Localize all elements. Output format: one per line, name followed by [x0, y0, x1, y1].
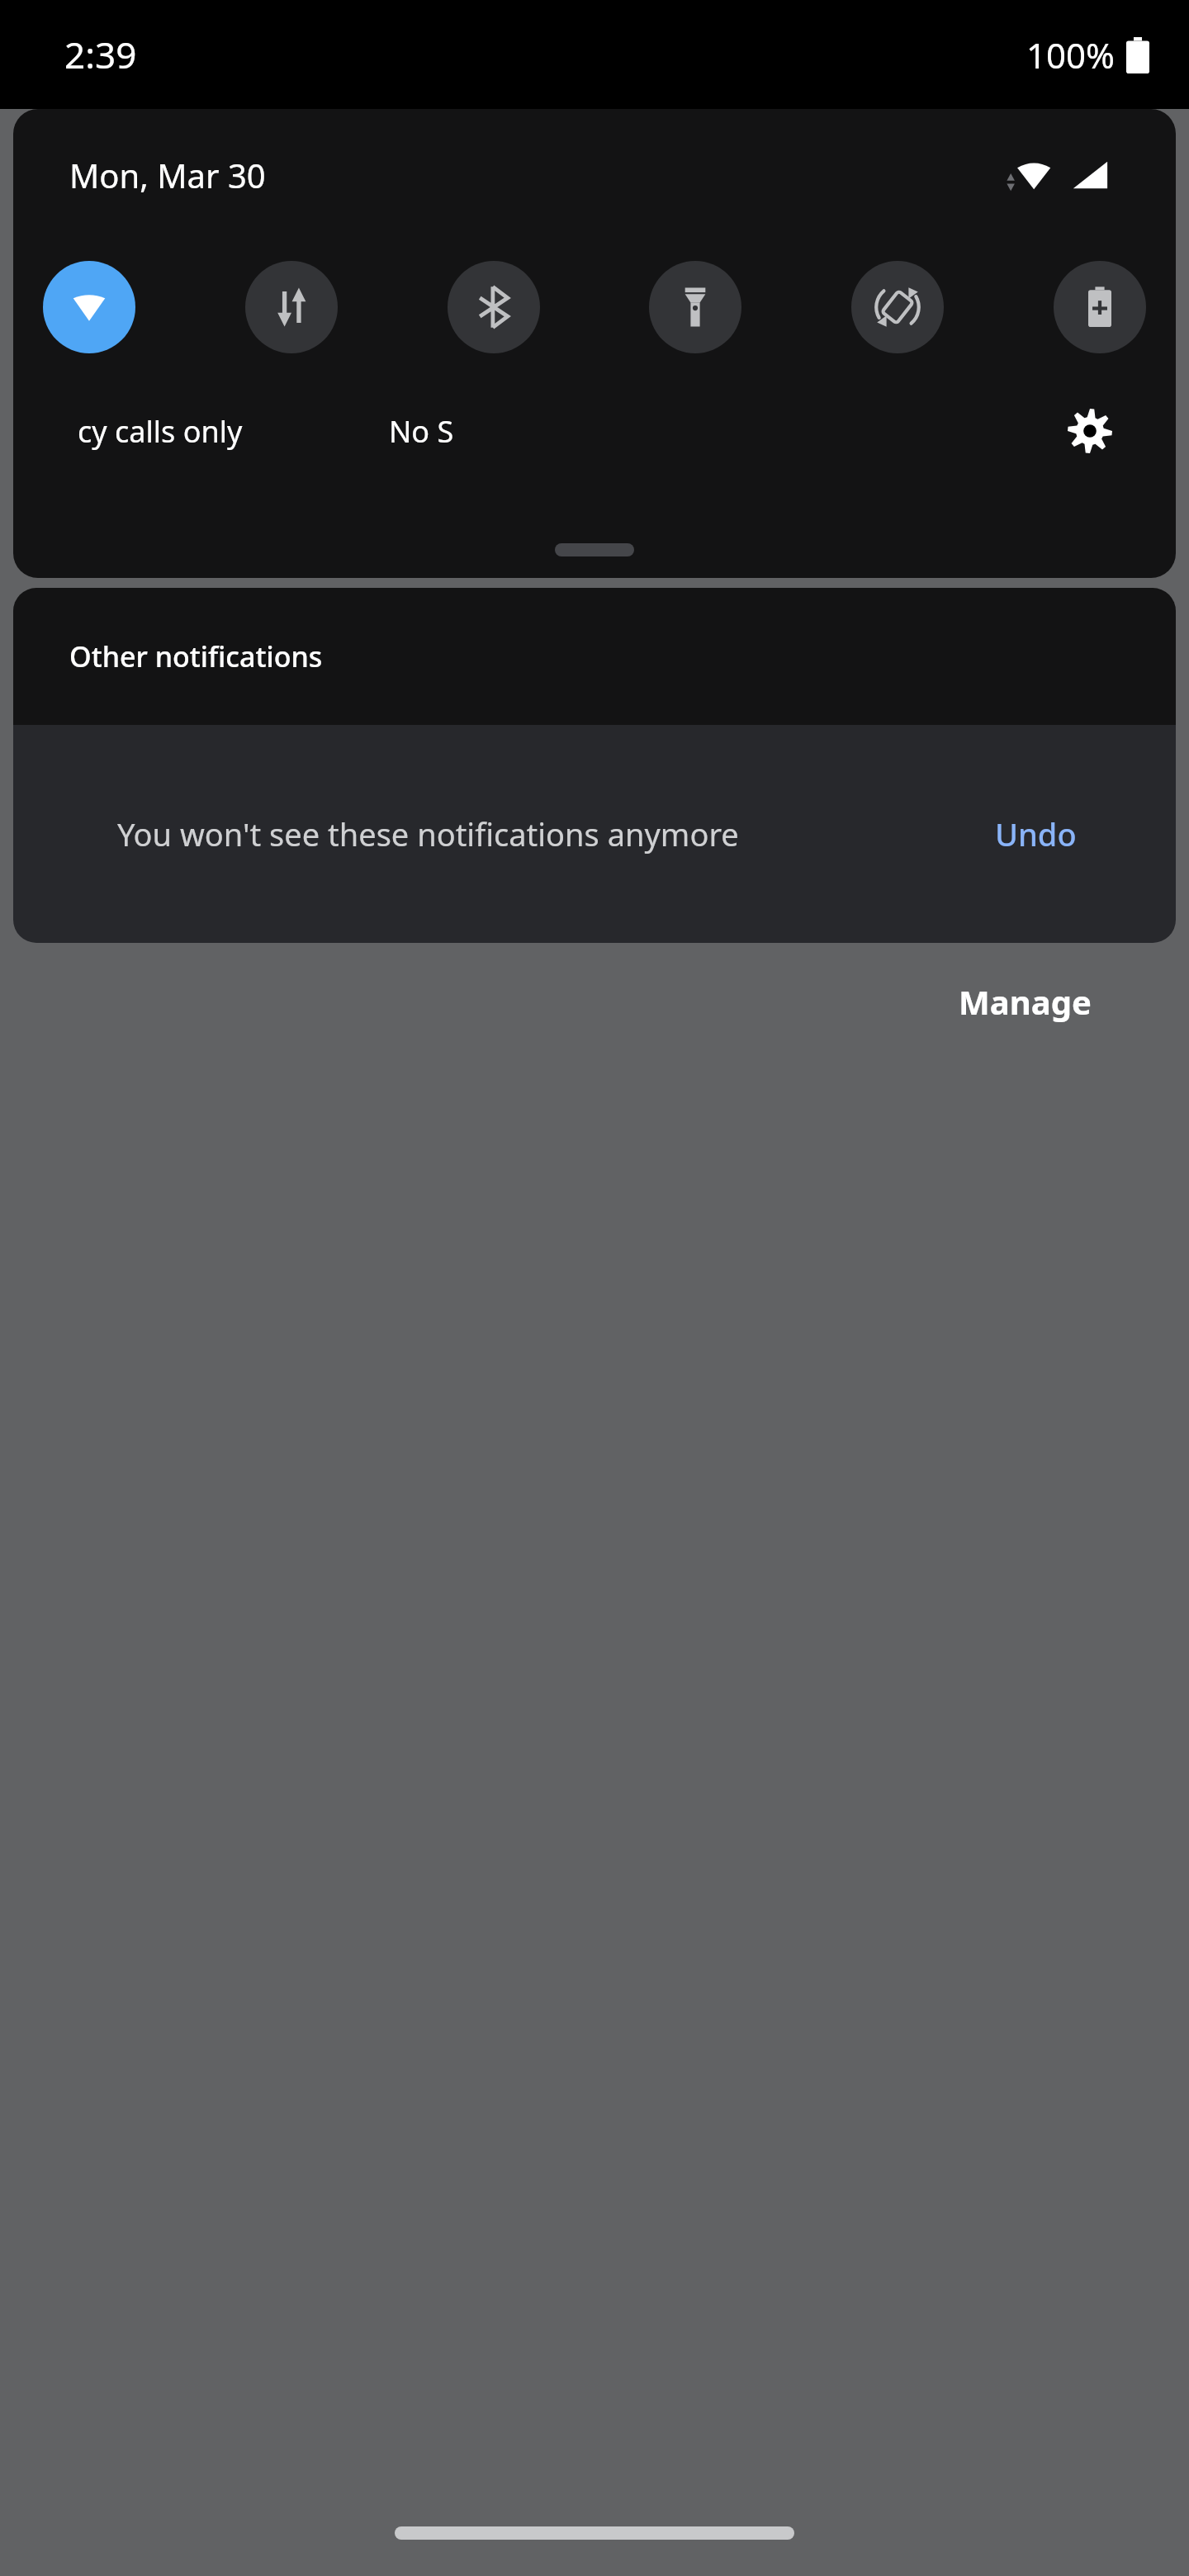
button[interactable]: Bluetooth	[448, 261, 540, 353]
staticText: Undo	[995, 812, 1077, 855]
button[interactable]: Undo	[995, 812, 1077, 855]
staticText: 100%	[1026, 31, 1115, 78]
button[interactable]: Expand quick settings	[555, 543, 634, 556]
staticText: cy calls only	[78, 411, 243, 452]
button[interactable]: Flashlight	[649, 261, 741, 353]
staticText: Manage	[959, 979, 1092, 1024]
button[interactable]: Battery Saver	[1054, 261, 1146, 353]
staticText: No S	[389, 411, 454, 452]
staticText: You won't see these notifications anymor…	[117, 812, 739, 855]
button[interactable]: Other notifications	[13, 588, 1176, 725]
button[interactable]: Wi-Fi	[43, 261, 135, 353]
staticText: Mon, Mar 30	[69, 153, 266, 197]
staticText: 2:39	[64, 30, 137, 79]
button[interactable]: Settings	[1055, 396, 1125, 466]
button[interactable]: Auto-rotate	[851, 261, 944, 353]
staticText: Other notifications	[69, 637, 323, 675]
button[interactable]: Manage	[959, 979, 1092, 1024]
button[interactable]: Mobile data	[245, 261, 338, 353]
